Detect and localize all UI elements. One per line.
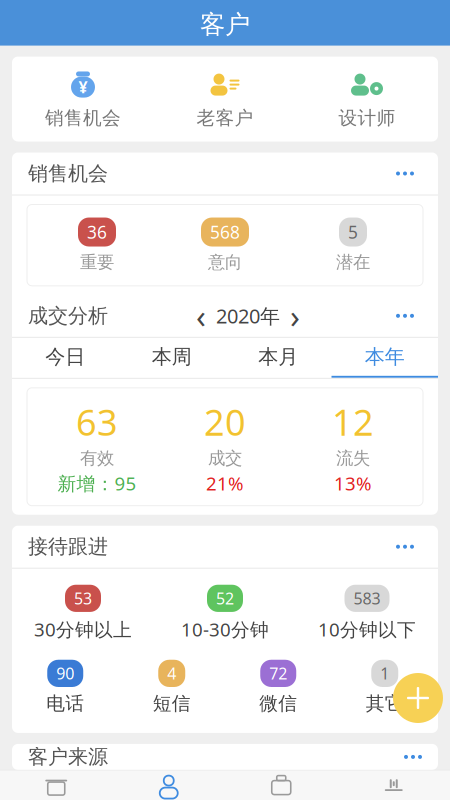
staticText: 重要 xyxy=(80,251,114,273)
staticText: › xyxy=(290,295,300,337)
staticText: 其它 xyxy=(366,692,404,715)
button[interactable]: 客户 xyxy=(112,768,225,800)
staticText: 销售机会 xyxy=(45,107,121,129)
staticText: 本周 xyxy=(152,344,192,369)
staticText: 90 xyxy=(56,663,74,684)
staticText: 21% xyxy=(206,471,244,496)
staticText: 13% xyxy=(334,471,372,496)
staticText: 12 xyxy=(332,398,374,446)
staticText: 63 xyxy=(76,398,118,446)
button[interactable]: 我的 xyxy=(337,768,450,800)
staticText: 微信 xyxy=(259,692,297,715)
staticText: 52 xyxy=(216,588,234,609)
button[interactable]: 更多 xyxy=(388,306,422,326)
staticText: 583 xyxy=(353,588,380,609)
staticText: 设计师 xyxy=(338,107,395,129)
staticText: 接待跟进 xyxy=(28,534,108,559)
staticText: 2020年 xyxy=(216,302,280,329)
staticText: 客户 xyxy=(200,9,250,40)
staticText: 10分钟以下 xyxy=(318,617,416,642)
button[interactable]: 本年 xyxy=(331,338,438,378)
staticText: 4 xyxy=(167,663,176,684)
staticText: 成交分析 xyxy=(28,303,108,328)
staticText: 本年 xyxy=(365,344,405,369)
staticText: 流失 xyxy=(336,448,370,469)
staticText: 成交 xyxy=(208,448,242,469)
button[interactable]: 更多 xyxy=(388,163,422,183)
staticText: 意向 xyxy=(208,251,242,273)
staticText: ¥ xyxy=(78,76,87,98)
staticText: 客户来源 xyxy=(28,745,108,769)
staticText: 10-30分钟 xyxy=(181,617,269,642)
staticText: 20 xyxy=(204,398,246,446)
button[interactable]: 今日 xyxy=(12,338,118,378)
button[interactable]: 首页 xyxy=(0,768,112,800)
button[interactable]: ¥ xyxy=(12,57,154,141)
staticText: 客户 xyxy=(153,799,185,800)
button[interactable]: 老客户 xyxy=(154,57,296,141)
staticText: 72 xyxy=(269,663,287,684)
staticText: 新增：95 xyxy=(57,471,136,496)
staticText: 潜在 xyxy=(336,251,370,273)
staticText: 老客户 xyxy=(196,107,253,129)
staticText: 5 xyxy=(348,220,358,243)
staticText: 电话 xyxy=(46,692,84,715)
staticText: ‹ xyxy=(196,295,206,337)
staticText: 有效 xyxy=(80,448,114,469)
staticText: 短信 xyxy=(153,692,191,715)
staticText: 销售机会 xyxy=(28,161,108,186)
button[interactable]: 上一年 xyxy=(186,295,216,337)
button[interactable]: 本月 xyxy=(225,338,331,378)
button[interactable]: 下一年 xyxy=(280,295,310,337)
staticText: 今日 xyxy=(45,344,85,369)
staticText: 1 xyxy=(380,663,389,684)
button[interactable]: 工作 xyxy=(225,768,337,800)
button[interactable]: 本周 xyxy=(118,338,225,378)
staticText: 53 xyxy=(74,588,92,609)
staticText: 30分钟以上 xyxy=(34,617,132,642)
button[interactable]: 新增 xyxy=(393,673,443,723)
button[interactable]: 设计师 xyxy=(296,57,438,141)
staticText: 36 xyxy=(87,220,107,243)
staticText: 568 xyxy=(210,220,240,243)
staticText: 本月 xyxy=(258,344,298,369)
button[interactable]: 更多 xyxy=(388,537,422,557)
